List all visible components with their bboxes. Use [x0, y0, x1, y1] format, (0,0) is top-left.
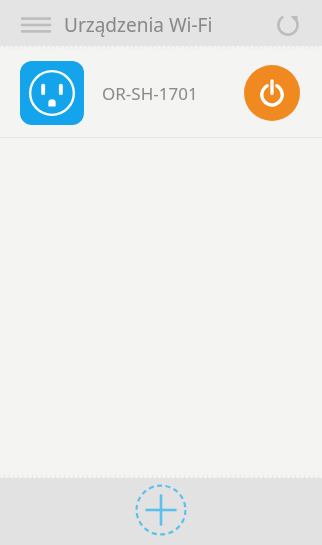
staticText: Urządzenia Wi-Fi	[64, 12, 213, 38]
button[interactable]: Add device	[134, 483, 188, 537]
button[interactable]: Menu	[14, 3, 58, 47]
button[interactable]: OR-SH-1701	[0, 49, 322, 137]
button[interactable]: Power	[244, 65, 300, 121]
staticText: OR-SH-1701	[102, 82, 198, 105]
button[interactable]: Refresh	[268, 5, 308, 45]
